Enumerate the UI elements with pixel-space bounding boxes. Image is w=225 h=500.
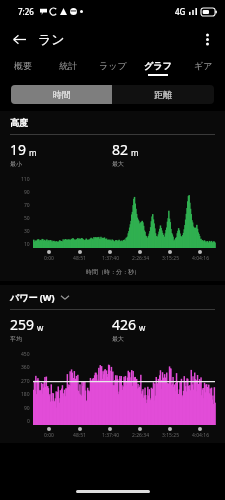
- staticText: 最大: [112, 335, 124, 343]
- staticText: 1:37:40: [102, 432, 119, 439]
- staticText: 時間（時：分：秒）: [86, 268, 140, 276]
- staticText: 平均: [10, 335, 22, 343]
- staticText: 90: [24, 405, 30, 412]
- button[interactable]: グラフ: [135, 56, 180, 80]
- staticText: ラン: [38, 31, 65, 47]
- staticText: 0: [27, 418, 30, 425]
- staticText: 19: [10, 140, 27, 159]
- button[interactable]: 距離: [112, 85, 214, 104]
- staticText: 2:26:34: [132, 432, 149, 439]
- staticText: m: [29, 147, 37, 158]
- staticText: 最小: [10, 160, 22, 168]
- button[interactable]: 概要: [0, 56, 45, 80]
- button[interactable]: ラップ: [90, 56, 135, 80]
- staticText: 48:51: [73, 432, 86, 439]
- button[interactable]: その他のオプション: [194, 26, 220, 52]
- staticText: 概要: [14, 60, 32, 71]
- button[interactable]: 時間: [11, 85, 112, 104]
- button[interactable]: ギア: [180, 56, 225, 80]
- staticText: 0:00: [44, 255, 54, 262]
- staticText: ラップ: [99, 60, 127, 71]
- staticText: 距離: [154, 89, 172, 100]
- staticText: 4G: [175, 6, 186, 17]
- staticText: 426: [112, 315, 137, 334]
- staticText: 450: [21, 351, 30, 358]
- staticText: w: [37, 322, 44, 333]
- staticText: 110: [21, 176, 30, 183]
- staticText: ギア: [194, 60, 213, 71]
- staticText: 0:00: [44, 432, 54, 439]
- staticText: 高度: [10, 117, 28, 128]
- staticText: 4:04:16: [192, 255, 209, 262]
- staticText: 4:04:16: [192, 432, 209, 439]
- button[interactable]: 統計: [45, 56, 90, 80]
- staticText: 30: [24, 228, 30, 235]
- staticText: 270: [21, 378, 30, 385]
- staticText: パワー (W): [10, 291, 55, 303]
- staticText: グラフ: [144, 60, 172, 71]
- button[interactable]: 戻る: [6, 26, 32, 52]
- staticText: 360: [21, 364, 30, 371]
- staticText: 48:51: [73, 255, 86, 262]
- staticText: 統計: [59, 60, 77, 71]
- staticText: 90: [24, 189, 30, 196]
- staticText: m: [131, 147, 139, 158]
- button[interactable]: パワー (W): [10, 291, 69, 303]
- staticText: 2:26:34: [132, 255, 149, 262]
- staticText: 70: [24, 202, 30, 209]
- staticText: 1:37:40: [102, 255, 119, 262]
- staticText: 82: [112, 140, 129, 159]
- staticText: 7:26: [18, 6, 34, 17]
- staticText: 3:15:25: [162, 432, 179, 439]
- staticText: 259: [10, 315, 35, 334]
- staticText: 180: [21, 391, 30, 398]
- staticText: 3:15:25: [162, 255, 179, 262]
- staticText: 50: [24, 215, 30, 222]
- staticText: 10: [24, 241, 30, 248]
- staticText: 最大: [112, 160, 124, 168]
- staticText: w: [139, 322, 146, 333]
- staticText: 時間: [53, 89, 71, 100]
- button[interactable]: 高度: [10, 117, 28, 128]
